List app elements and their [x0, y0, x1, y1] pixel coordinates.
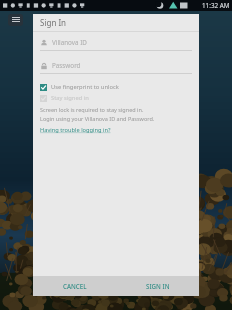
staticText: Having trouble logging in?	[40, 126, 111, 134]
button[interactable]: Use fingerprint to unlock	[40, 83, 192, 91]
staticText: 11:32 AM	[202, 1, 230, 10]
button[interactable]: Menu	[8, 14, 23, 26]
button[interactable]: SIGN IN	[116, 276, 199, 296]
button[interactable]: Villanova ID	[40, 38, 192, 51]
staticText: Villanova ID	[52, 38, 87, 47]
staticText: Password	[52, 61, 81, 70]
button[interactable]: Having trouble logging in?	[40, 126, 111, 134]
staticText: Sign In	[40, 17, 67, 28]
staticText: SIGN IN	[146, 282, 170, 290]
staticText: Stay signed in	[51, 94, 89, 102]
staticText: Use fingerprint to unlock	[51, 83, 119, 91]
staticText: CANCEL	[63, 282, 87, 290]
staticText: Login using your Villanova ID and Passwo…	[40, 115, 155, 122]
button[interactable]: Stay signed in	[40, 94, 192, 102]
button[interactable]: CANCEL	[33, 276, 116, 296]
button[interactable]: Password	[40, 61, 192, 74]
staticText: Screen lock is required to stay signed i…	[40, 106, 144, 113]
